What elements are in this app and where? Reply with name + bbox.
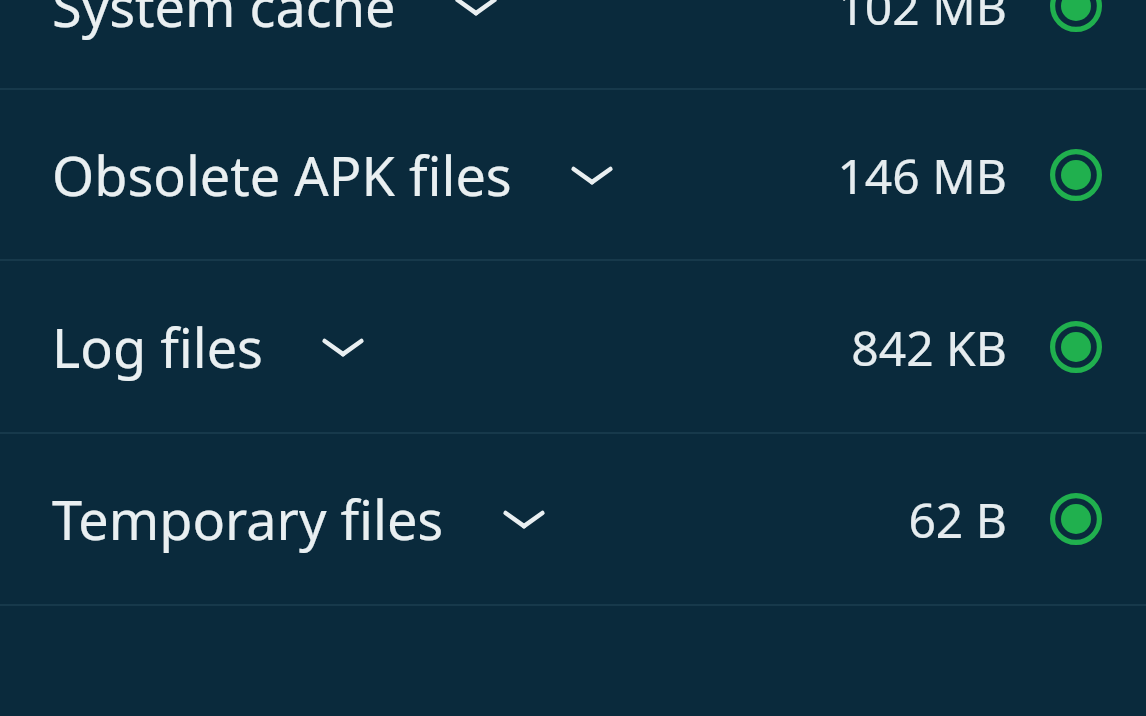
staticText: Obsolete APK files — [52, 138, 512, 212]
button[interactable]: Expand System cache — [446, 0, 506, 32]
staticText: System cache — [52, 0, 396, 43]
button[interactable]: Select Log files — [1045, 316, 1107, 378]
staticText: Temporary files — [52, 482, 444, 556]
button[interactable]: System cache — [0, 0, 1146, 88]
button[interactable]: Expand Log files — [313, 321, 373, 373]
button[interactable]: Log files — [0, 261, 1146, 432]
button[interactable]: Select Obsolete APK files — [1045, 144, 1107, 206]
staticText: 842 KB — [851, 315, 1007, 380]
staticText: 62 B — [908, 487, 1007, 552]
staticText: 102 MB — [837, 0, 1007, 39]
button[interactable]: Expand Temporary files — [494, 493, 554, 545]
button[interactable]: Select System cache — [1045, 0, 1107, 37]
staticText: Log files — [52, 310, 263, 384]
button[interactable]: Select Temporary files — [1045, 488, 1107, 550]
button[interactable]: Temporary files — [0, 434, 1146, 604]
button[interactable]: Obsolete APK files — [0, 90, 1146, 259]
button[interactable]: Expand Obsolete APK files — [562, 149, 622, 201]
staticText: 146 MB — [837, 143, 1007, 208]
